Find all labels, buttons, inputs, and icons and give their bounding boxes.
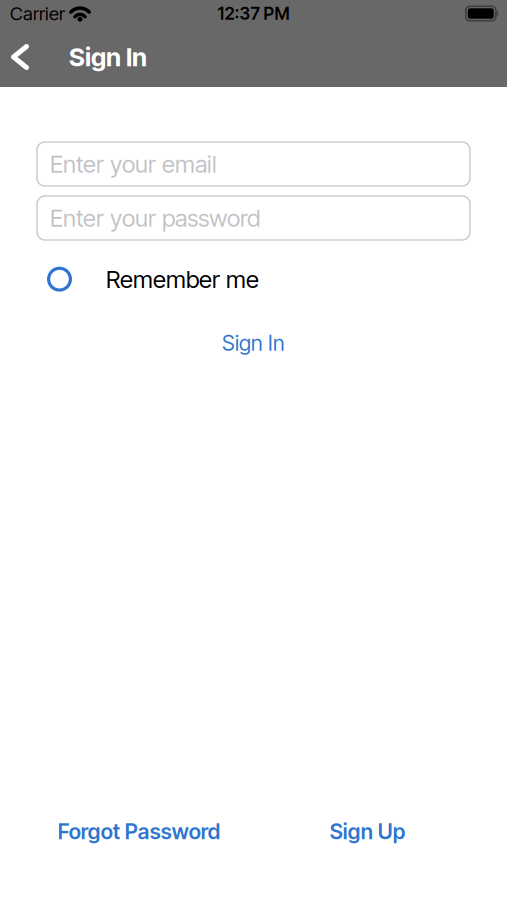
- button[interactable]: Sign Up: [253, 819, 482, 844]
- staticText: Remember me: [106, 265, 259, 293]
- staticText: Sign Up: [330, 819, 406, 844]
- button[interactable]: Remember me: [0, 265, 507, 293]
- staticText: Forgot Password: [58, 819, 221, 844]
- staticText: Enter your password: [50, 204, 260, 232]
- staticText: 12:37 PM: [217, 3, 289, 24]
- staticText: Sign In: [69, 42, 147, 72]
- staticText: Carrier: [10, 2, 65, 24]
- button[interactable]: Forgot Password: [25, 819, 253, 844]
- staticText: Sign In: [222, 330, 285, 355]
- button[interactable]: Back: [0, 44, 39, 70]
- button[interactable]: Sign In: [202, 330, 305, 355]
- staticText: Enter your email: [50, 150, 217, 178]
